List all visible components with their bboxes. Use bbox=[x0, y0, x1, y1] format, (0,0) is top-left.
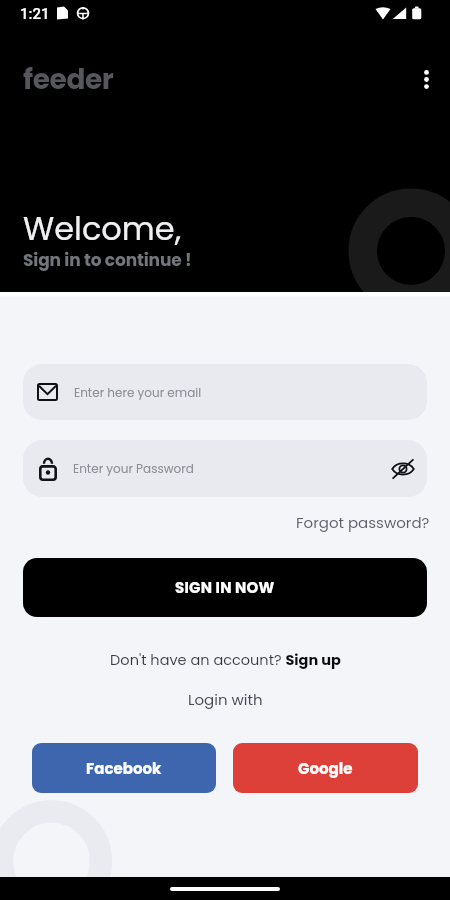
staticText: Forgot password? bbox=[296, 512, 430, 533]
staticText: Enter here your email bbox=[74, 384, 202, 401]
button[interactable]: Enter here your email bbox=[23, 364, 427, 420]
button[interactable]: More options bbox=[405, 58, 447, 100]
button[interactable]: Show password bbox=[384, 450, 422, 488]
button[interactable]: Facebook bbox=[32, 743, 216, 793]
button[interactable]: Google bbox=[233, 743, 418, 793]
staticText: feeder bbox=[23, 60, 114, 99]
staticText: Facebook bbox=[86, 758, 162, 779]
staticText: SIGN IN NOW bbox=[175, 577, 275, 598]
staticText: 1:21 bbox=[20, 5, 50, 23]
button[interactable]: Enter your Password bbox=[23, 440, 427, 497]
staticText: Sign in to continue ! bbox=[23, 248, 192, 272]
button[interactable]: SIGN IN NOW bbox=[23, 558, 427, 617]
button[interactable]: Forgot password? bbox=[296, 509, 430, 536]
button[interactable]: Don't have an account? Sign up bbox=[110, 650, 341, 670]
staticText: Enter your Password bbox=[73, 460, 194, 477]
staticText: Welcome, bbox=[23, 206, 181, 251]
staticText: Google bbox=[298, 758, 353, 779]
staticText: Login with bbox=[188, 689, 263, 710]
staticText: Don't have an account? Sign up bbox=[110, 650, 341, 670]
